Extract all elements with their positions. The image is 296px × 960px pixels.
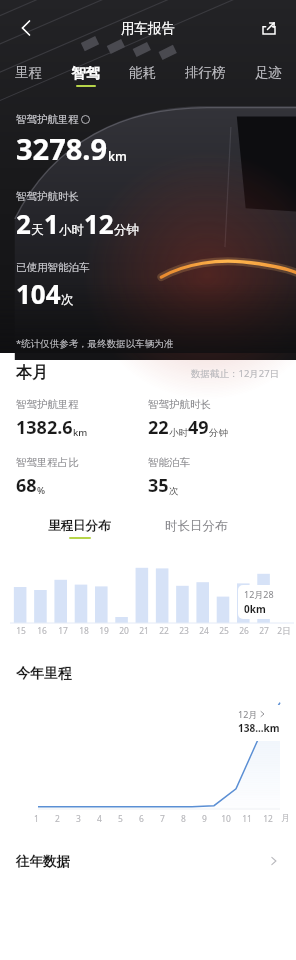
staticText: 12月 — [238, 708, 258, 720]
button[interactable]: 12月28 — [238, 585, 296, 619]
staticText: *统计仅供参考，最终数据以车辆为准 — [16, 337, 174, 350]
button[interactable]: 里程 — [0, 56, 57, 94]
staticText: 能耗 — [129, 64, 156, 81]
staticText: 用车报告 — [121, 20, 175, 37]
staticText: 智驾护航里程 — [16, 398, 79, 411]
staticText: 22 — [159, 625, 169, 637]
staticText: 35 — [148, 473, 169, 498]
button[interactable]: 排行榜 — [170, 56, 240, 94]
staticText: 分钟 — [209, 427, 228, 439]
staticText: 20 — [119, 625, 129, 637]
staticText: 1382.6 — [16, 415, 73, 440]
staticText: 小时 — [59, 222, 84, 238]
staticText: 25 — [219, 625, 229, 637]
button[interactable]: 时长日分布 — [165, 518, 228, 534]
button[interactable]: Share — [250, 9, 288, 47]
staticText: 排行榜 — [185, 64, 226, 81]
staticText: 4 — [97, 813, 102, 825]
staticText: km — [73, 426, 88, 439]
staticText: 3 — [76, 813, 81, 825]
button[interactable]: Back — [6, 8, 46, 48]
staticText: 小时 — [169, 427, 188, 439]
staticText: 21 — [139, 625, 149, 637]
staticText: 26 — [239, 625, 249, 637]
staticText: 本月 — [16, 363, 48, 383]
staticText: 18 — [79, 625, 89, 637]
staticText: 1 — [44, 206, 59, 241]
staticText: 足迹 — [255, 64, 282, 81]
staticText: 19 — [99, 625, 109, 637]
staticText: 今年里程 — [16, 665, 72, 683]
staticText: 104 — [16, 276, 61, 311]
staticText: 68 — [16, 473, 37, 498]
staticText: 数据截止：12月27日 — [191, 367, 280, 380]
staticText: 24 — [199, 625, 209, 637]
staticText: 12月28 — [244, 588, 274, 600]
staticText: 智驾护航时长 — [148, 398, 211, 411]
staticText: 22 — [148, 415, 169, 440]
staticText: 27 — [259, 625, 269, 637]
staticText: 次 — [61, 292, 74, 308]
staticText: 往年数据 — [16, 853, 70, 870]
staticText: 17 — [58, 625, 68, 637]
button[interactable]: 足迹 — [240, 56, 296, 94]
staticText: km — [108, 148, 127, 165]
button[interactable]: 智驾 — [57, 56, 114, 94]
staticText: 已使用智能泊车 — [16, 261, 90, 274]
staticText: 49 — [188, 415, 209, 440]
staticText: 智驾 — [71, 64, 100, 82]
staticText: 智驾里程占比 — [16, 456, 79, 469]
staticText: 15 — [16, 625, 26, 637]
staticText: 1 — [34, 813, 39, 825]
staticText: 智驾护航时长 — [16, 190, 79, 203]
staticText: 9 — [202, 813, 207, 825]
staticText: 次 — [169, 485, 179, 497]
staticText: 2 — [16, 206, 31, 241]
staticText: 3278.9 — [16, 129, 108, 168]
staticText: 里程 — [15, 64, 42, 81]
button[interactable]: 往年数据 — [0, 839, 296, 883]
staticText: 0km — [244, 602, 266, 616]
staticText: 智驾护航里程 — [16, 113, 79, 126]
staticText: 138...km — [238, 721, 280, 735]
staticText: 智能泊车 — [148, 456, 190, 469]
staticText: 16 — [37, 625, 47, 637]
staticText: 分钟 — [114, 222, 139, 238]
staticText: 6 — [139, 813, 144, 825]
staticText: 7 — [160, 813, 165, 825]
staticText: 8 — [181, 813, 186, 825]
staticText: 天 — [31, 222, 44, 238]
staticText: 月 — [281, 813, 290, 824]
button[interactable]: 里程日分布 — [48, 518, 111, 539]
staticText: 里程日分布 — [48, 518, 111, 534]
staticText: % — [37, 484, 46, 497]
staticText: 11 — [242, 813, 252, 825]
staticText: 5 — [118, 813, 123, 825]
button[interactable]: 能耗 — [114, 56, 170, 94]
staticText: 12 — [263, 813, 273, 825]
staticText: 2 — [55, 813, 60, 825]
button[interactable]: 12月 — [232, 705, 294, 741]
staticText: 10 — [221, 813, 231, 825]
staticText: 2日 — [277, 625, 291, 637]
staticText: 12 — [84, 206, 114, 241]
staticText: 23 — [179, 625, 189, 637]
staticText: 时长日分布 — [165, 518, 228, 534]
